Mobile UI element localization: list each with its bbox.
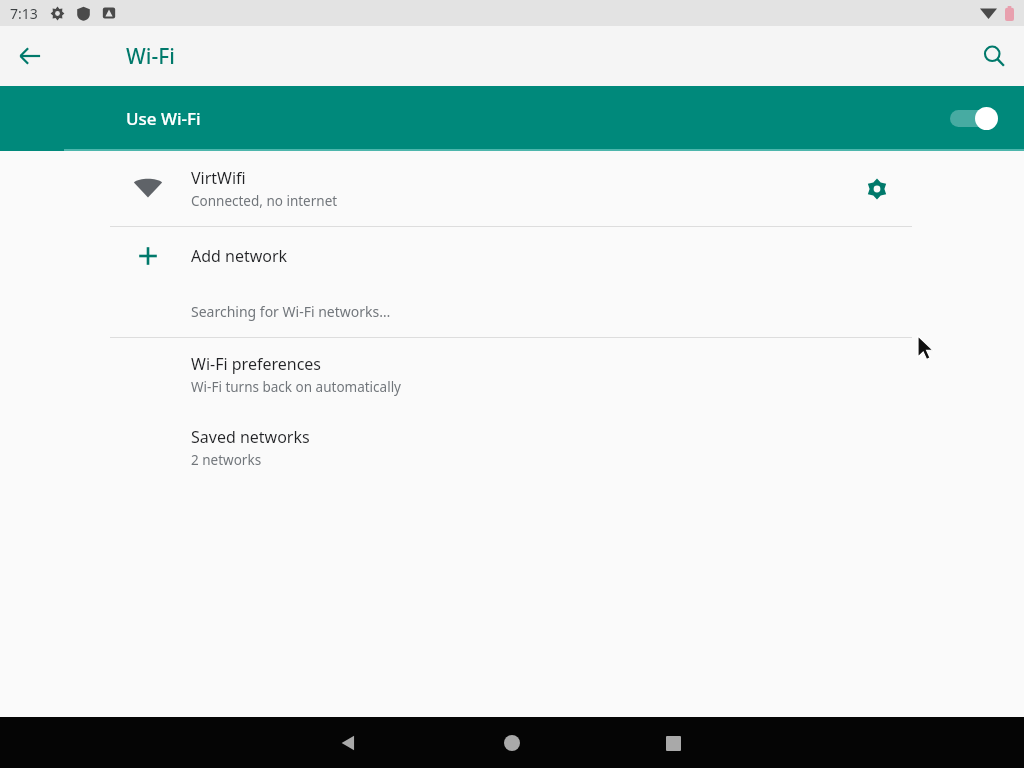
button[interactable]: Saved networks [0,411,1024,484]
button[interactable]: Back [6,32,54,80]
button[interactable]: Network settings [855,167,899,211]
button[interactable]: Search [970,32,1018,80]
button[interactable]: Add network [0,227,1024,285]
button[interactable]: Wi-Fi preferences [0,338,1024,411]
staticText: Searching for Wi-Fi networks… [191,302,391,321]
button[interactable]: Home [488,719,536,767]
staticText: Saved networks [191,426,310,448]
staticText: Use Wi-Fi [126,107,201,130]
staticText: Add network [191,245,288,267]
staticText: VirtWifi [191,167,246,189]
button[interactable]: VirtWifi [0,151,1024,226]
button[interactable]: Back [324,719,372,767]
button[interactable]: Use Wi-Fi [0,86,1024,151]
staticText: Wi-Fi [126,42,175,71]
staticText: Wi-Fi preferences [191,353,322,375]
button[interactable]: Recent apps [649,719,697,767]
staticText: Connected, no internet [191,192,338,210]
staticText: 7:13 [10,4,38,23]
staticText: 2 networks [191,451,262,469]
staticText: Wi-Fi turns back on automatically [191,378,402,396]
